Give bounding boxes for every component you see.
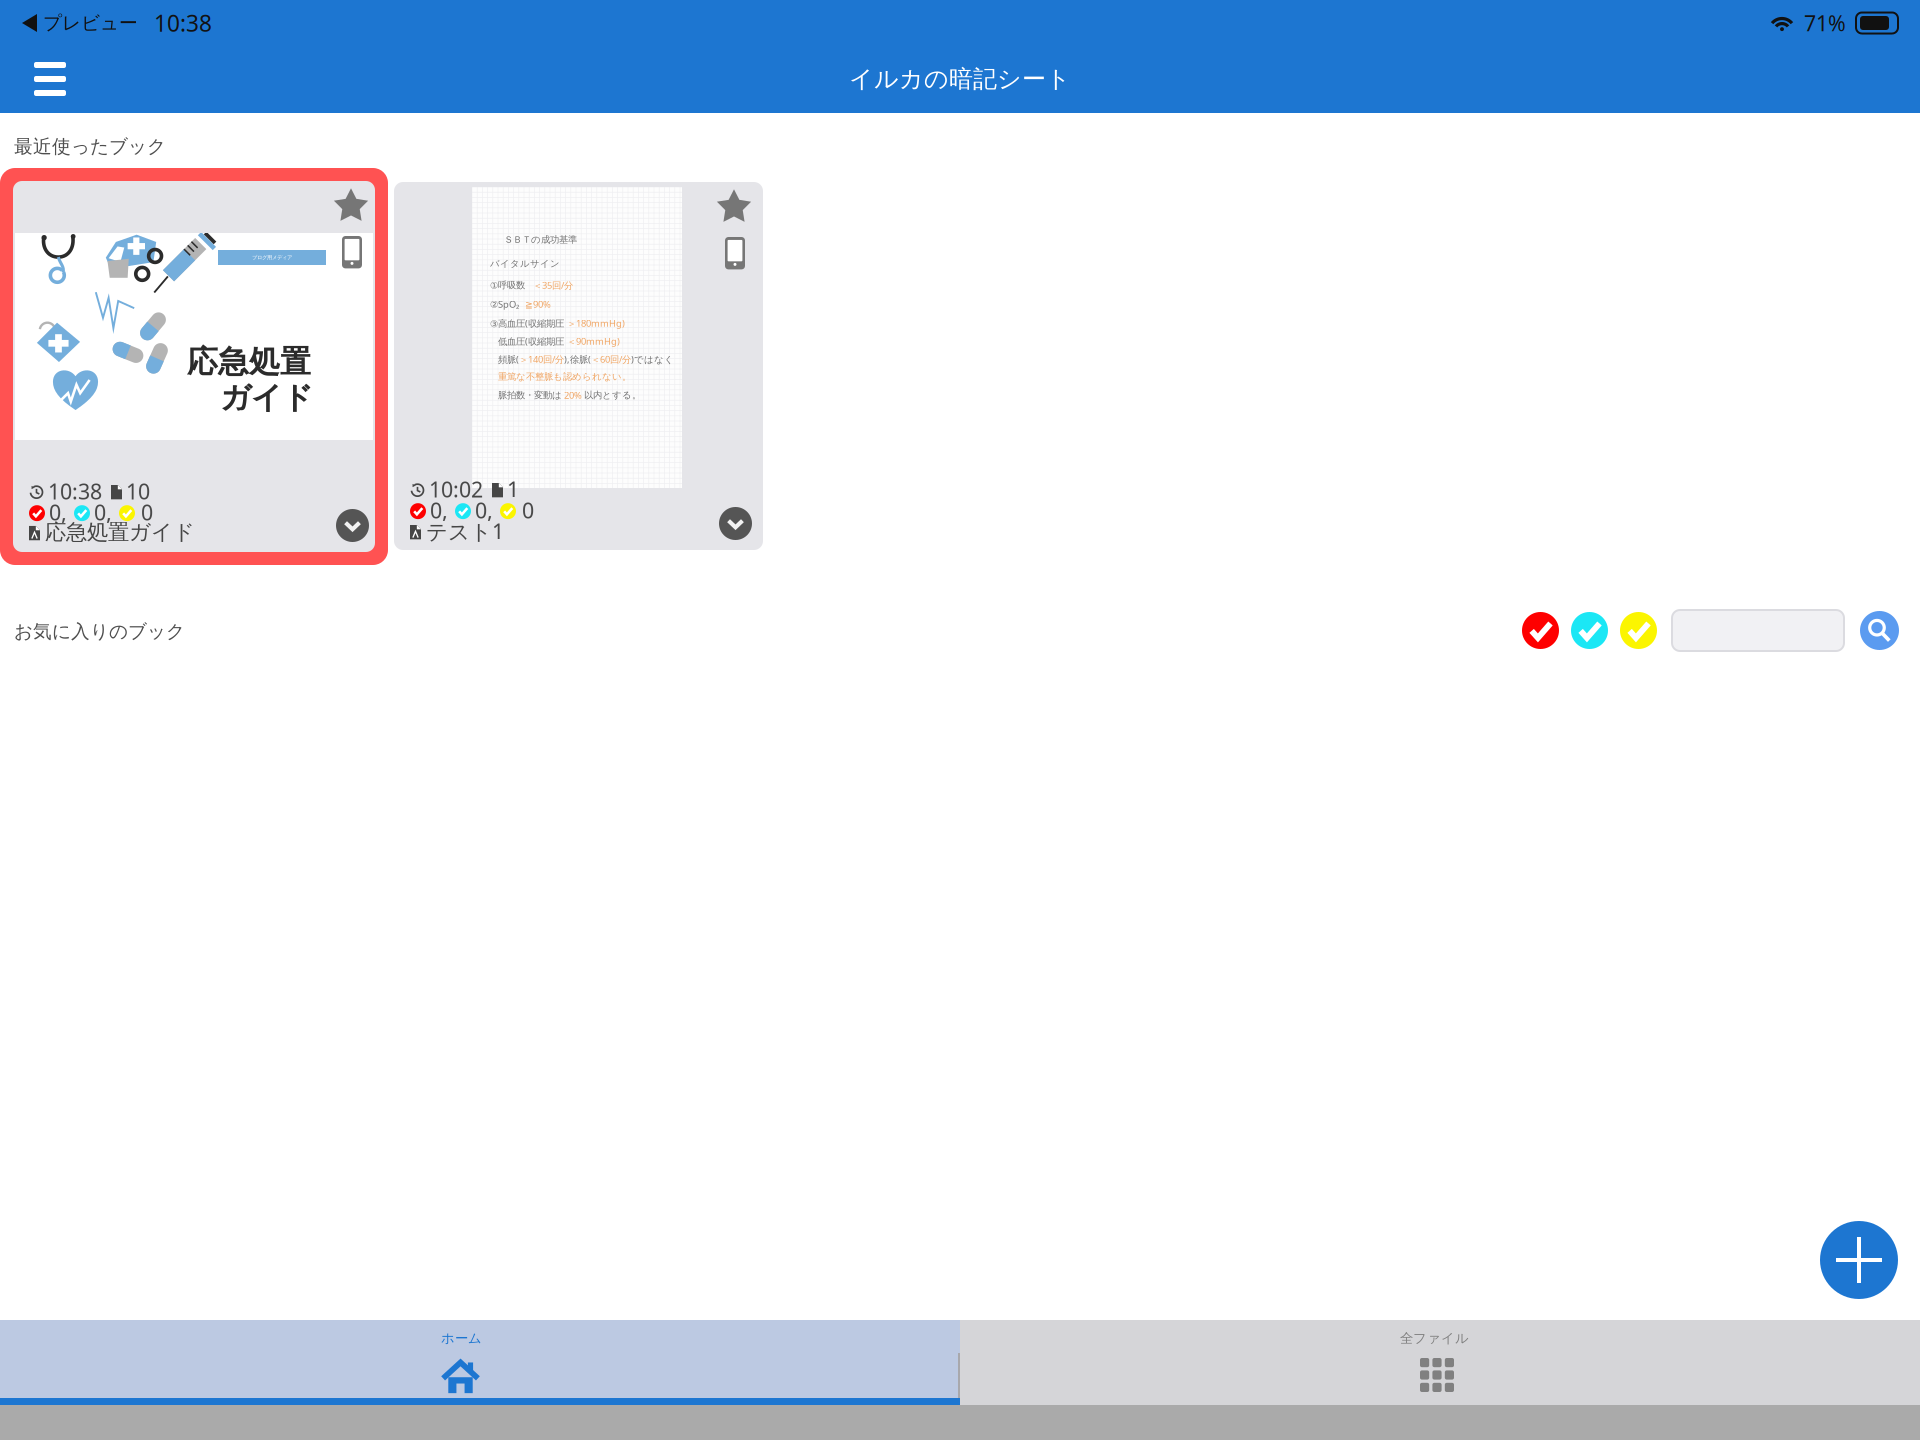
staticText: 応急処置ガイド [45,519,195,545]
staticText: 0, [430,496,448,524]
staticText: 最近使ったブック [14,135,166,158]
staticText: 71% [1804,9,1846,37]
button[interactable]: 新規作成 [1820,1221,1898,1299]
staticText: ＳＢＴの成功基準 [504,234,577,245]
staticText: 10:02 [429,475,483,503]
staticText: 0, [94,498,112,526]
button[interactable]: 全ファイル [960,1320,1920,1405]
staticText: ガイド [220,379,313,417]
staticText: 1 [507,475,519,503]
staticText: 重篤な不整脈も認められない。 [498,371,631,382]
staticText: お気に入りのブック [14,620,185,643]
button[interactable]: 検索 [1860,611,1899,650]
staticText: 全ファイル [1400,1330,1469,1346]
staticText: ②SpO₂ [490,298,519,310]
button[interactable]: 水色 [1571,612,1608,649]
button[interactable]: 黄 [1620,612,1657,649]
staticText: ホーム [441,1330,482,1346]
staticText: ブログ用メディア [252,254,292,261]
staticText: ≧90% [525,298,551,310]
staticText: 0, [475,496,493,524]
staticText: ＜60回/分 [591,353,631,365]
staticText: ＜35回/分 [533,279,573,291]
staticText: ),徐脈( [564,353,591,365]
staticText: バイタルサイン [490,258,560,269]
button[interactable]: ブログ用メディア [0,168,388,565]
staticText: 0 [522,496,534,524]
staticText: 10:38 [48,477,102,505]
staticText: ①呼吸数 [490,279,525,291]
button[interactable]: 赤 [1522,612,1559,649]
staticText: ＞140回/分 [519,353,564,365]
staticText: 0, [49,498,67,526]
staticText: 頻脈( [498,353,519,365]
staticText: テスト1 [426,517,504,545]
staticText: 以内とする。 [584,389,641,401]
staticText: ＞180mmHg) [567,317,625,329]
staticText: 0 [141,498,153,526]
staticText: 10:38 [154,8,212,38]
staticText: 脈拍数・変動は [498,389,562,401]
staticText: 応急処置 [187,343,311,381]
button[interactable]: メニュー [22,51,78,107]
staticText: ＜90mmHg) [567,335,620,347]
staticText: 低血圧(収縮期圧 [498,335,564,347]
staticText: イルカの暗記シート [849,64,1071,94]
staticText: ③高血圧(収縮期圧 [490,317,564,329]
staticText: )ではなく [631,353,674,365]
button[interactable]: ＳＢＴの成功基準 [394,182,763,550]
staticText: 20% [564,389,582,401]
staticText: プレビュー [43,11,138,34]
staticText: 10 [126,477,150,505]
button[interactable]: ホーム [0,1320,960,1405]
